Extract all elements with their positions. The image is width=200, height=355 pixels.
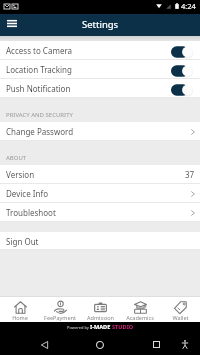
staticText: Admission: [87, 314, 114, 321]
staticText: Academics: [126, 314, 154, 321]
staticText: Version: [6, 169, 35, 180]
button[interactable]: Location Tracking: [0, 60, 200, 79]
button[interactable]: Open navigation menu: [4, 17, 20, 33]
staticText: Push Notification: [6, 83, 71, 94]
button[interactable]: Academics: [120, 296, 160, 322]
button[interactable]: Device Info: [0, 184, 200, 203]
staticText: 4:24: [181, 1, 196, 11]
button[interactable]: Change Password: [0, 122, 200, 141]
staticText: Wallet: [172, 314, 189, 321]
button[interactable]: Recent apps: [142, 334, 171, 355]
button[interactable]: Troubleshoot: [0, 203, 200, 222]
staticText: Home: [12, 314, 28, 321]
button[interactable]: Home: [0, 296, 40, 322]
staticText: Location Tracking: [6, 64, 72, 75]
staticText: STUDIO: [112, 323, 134, 331]
button[interactable]: Access to Camera: [0, 41, 200, 60]
button[interactable]: Sign Out: [0, 232, 200, 250]
staticText: FeePayment: [44, 314, 76, 321]
button[interactable]: Home: [85, 334, 114, 355]
button[interactable]: Back: [30, 334, 59, 355]
staticText: Settings: [82, 18, 119, 31]
staticText: Troubleshoot: [6, 207, 56, 218]
staticText: Access to Camera: [6, 45, 73, 56]
button[interactable]: Version: [0, 165, 200, 184]
staticText: Device Info: [6, 188, 48, 199]
button[interactable]: Wallet: [160, 296, 200, 322]
staticText: Sign Out: [6, 236, 39, 247]
staticText: Change Password: [6, 126, 74, 137]
button[interactable]: FeePayment: [40, 296, 80, 322]
button[interactable]: Admission: [80, 296, 120, 322]
button[interactable]: Accessibility: [173, 334, 197, 355]
staticText: I-MADE: [90, 323, 112, 331]
staticText: ABOUT: [6, 154, 27, 162]
button[interactable]: Push Notification: [0, 79, 200, 98]
staticText: 37: [185, 169, 195, 180]
staticText: Powered by: [67, 325, 90, 330]
staticText: PRIVACY AND SECURITY: [6, 111, 73, 119]
